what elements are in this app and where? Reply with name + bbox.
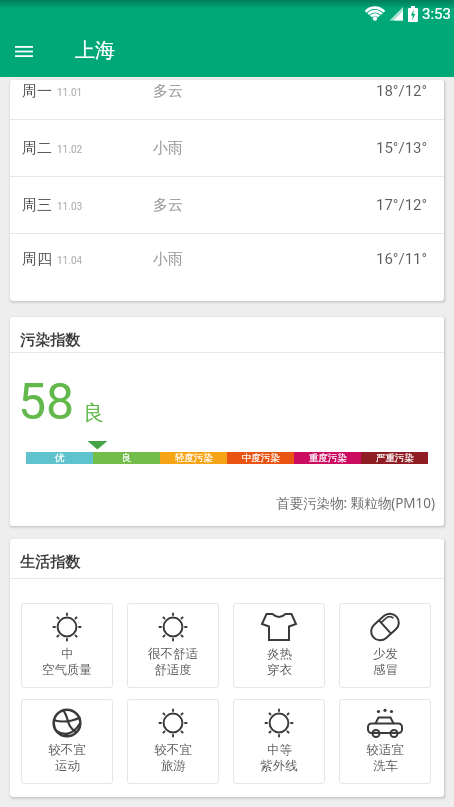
staticText: 中度污染 [242,452,280,464]
staticText: 中 [61,646,74,662]
staticText: 周四 [22,250,52,269]
staticText: 优 [55,452,65,464]
staticText: 多云 [153,82,183,101]
staticText: 轻度污染 [175,452,213,464]
staticText: 炎热 [267,646,292,662]
staticText: 16°/11° [376,250,428,268]
staticText: 紫外线 [260,758,298,774]
staticText: 11.04 [57,255,83,267]
staticText: 周一 [22,82,52,101]
staticText: 58 [18,373,75,432]
staticText: 周三 [22,196,52,215]
staticText: 严重污染 [376,452,414,464]
staticText: 中等 [267,742,292,758]
button[interactable]: 很不舒适 [127,603,219,688]
staticText: 污染指数 [20,331,80,350]
staticText: 运动 [55,758,80,774]
staticText: 上海 [75,38,115,63]
staticText: 首要污染物: 颗粒物(PM10) [276,494,436,512]
button[interactable]: 较不宜 [127,699,219,784]
button[interactable]: 中 [21,603,113,688]
staticText: 空气质量 [42,662,92,678]
staticText: 17°/12° [376,196,428,214]
staticText: 舒适度 [154,662,192,678]
button[interactable]: 周四 [10,234,444,284]
staticText: 11.01 [57,87,83,99]
staticText: 15°/13° [376,139,428,157]
staticText: 较不宜 [48,742,86,758]
staticText: 11.02 [57,144,83,156]
button[interactable]: 周二 [10,120,444,176]
staticText: 旅游 [161,758,186,774]
button[interactable] [0,28,48,77]
button[interactable]: 周三 [10,177,444,233]
staticText: 多云 [153,196,183,215]
staticText: 小雨 [153,139,183,158]
staticText: 穿衣 [267,662,292,678]
button[interactable]: 较适宜 [339,699,431,784]
staticText: 少发 [373,646,398,662]
staticText: 18°/12° [376,82,428,100]
staticText: 小雨 [153,250,183,269]
staticText: 良 [83,400,104,426]
button[interactable]: 炎热 [233,603,325,688]
button[interactable]: 少发 [339,603,431,688]
staticText: 重度污染 [309,452,347,464]
button[interactable]: 中等 [233,699,325,784]
button[interactable]: 较不宜 [21,699,113,784]
staticText: 11.03 [57,201,83,213]
staticText: 生活指数 [20,553,80,572]
staticText: 感冒 [373,662,398,678]
staticText: 周二 [22,139,52,158]
staticText: 3:53 [422,5,451,23]
staticText: 较不宜 [154,742,192,758]
staticText: 很不舒适 [148,646,198,662]
staticText: 良 [122,452,132,464]
button[interactable]: 周一 [10,80,444,119]
staticText: 洗车 [373,758,398,774]
staticText: 较适宜 [366,742,404,758]
